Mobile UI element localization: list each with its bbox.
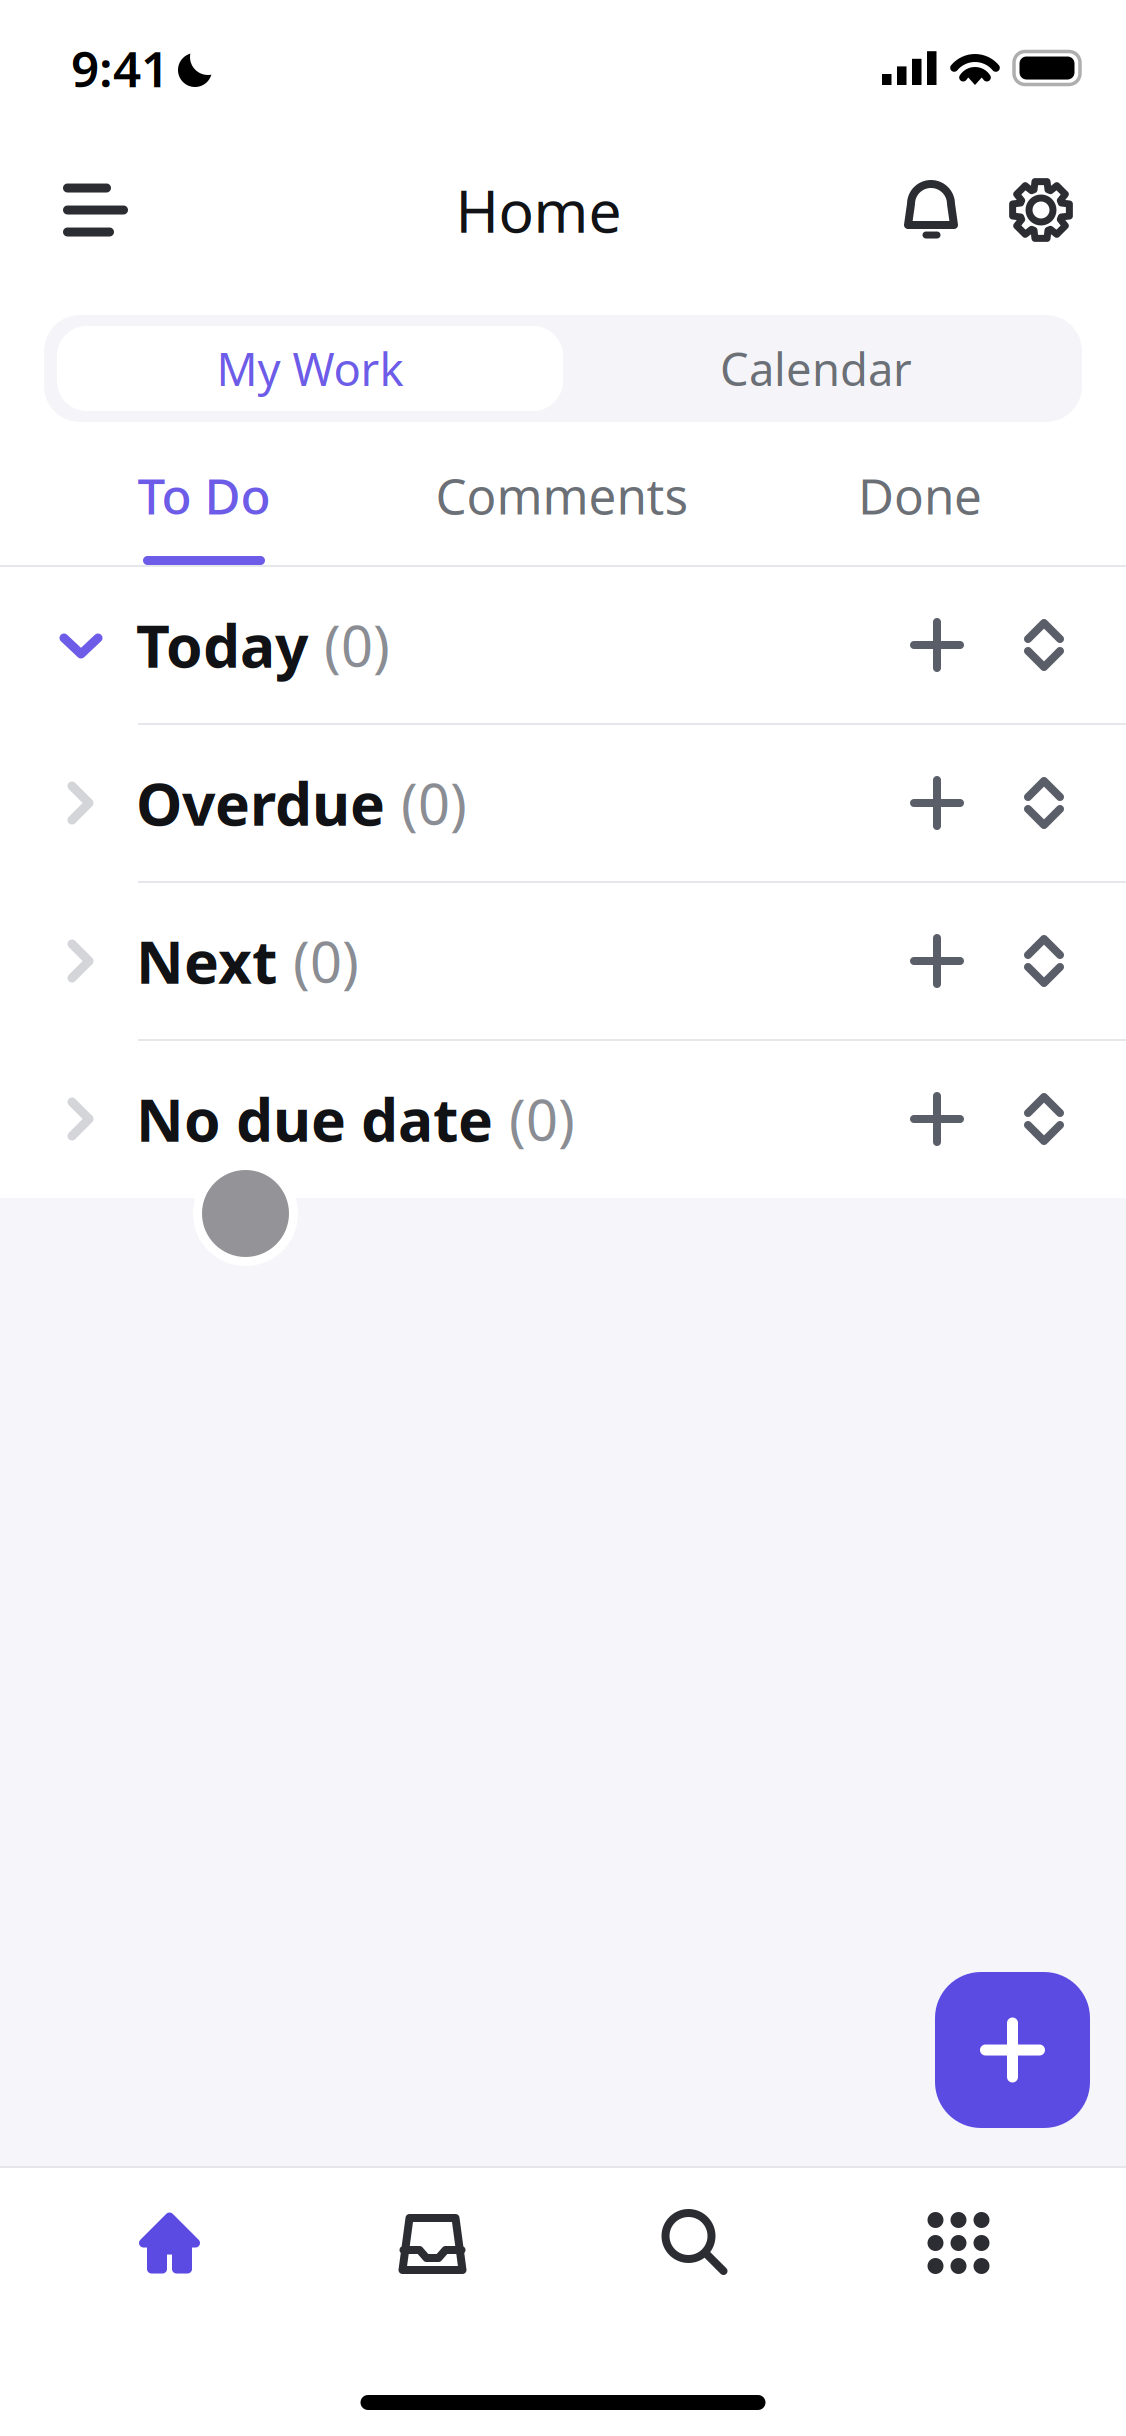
button[interactable]: Notifications <box>876 136 986 284</box>
button[interactable]: No due date <box>0 1041 1126 1197</box>
staticText: (0) <box>324 608 390 682</box>
button[interactable]: Settings <box>986 136 1096 284</box>
button[interactable]: Apps <box>827 2188 1090 2298</box>
button[interactable]: Search <box>564 2188 827 2298</box>
button[interactable]: Menu <box>0 136 201 284</box>
button[interactable]: To Do <box>25 440 383 565</box>
staticText: Done <box>858 462 982 528</box>
staticText: (0) <box>401 766 467 840</box>
staticText: Comments <box>435 462 688 528</box>
staticText: (0) <box>293 924 359 998</box>
button[interactable]: Next <box>0 883 1126 1039</box>
staticText: My Work <box>216 338 403 399</box>
button[interactable]: Calendar <box>563 326 1069 411</box>
staticText: Overdue <box>136 764 385 842</box>
button[interactable]: Comments <box>383 440 741 565</box>
button[interactable]: Home <box>38 2188 301 2298</box>
staticText: To Do <box>137 462 270 528</box>
button[interactable]: My Work <box>57 326 563 411</box>
staticText: Today <box>136 606 308 684</box>
button[interactable]: Done <box>741 440 1099 565</box>
button[interactable]: Inbox <box>301 2188 564 2298</box>
staticText: Calendar <box>720 338 912 399</box>
button[interactable]: Today <box>0 567 1126 723</box>
staticText: (0) <box>509 1082 575 1156</box>
staticText: Next <box>136 922 277 1000</box>
button[interactable]: New task <box>935 1972 1090 2128</box>
staticText: Home <box>455 171 621 249</box>
staticText: 9:41 <box>71 35 169 101</box>
staticText: No due date <box>136 1080 493 1158</box>
button[interactable]: Overdue <box>0 725 1126 881</box>
